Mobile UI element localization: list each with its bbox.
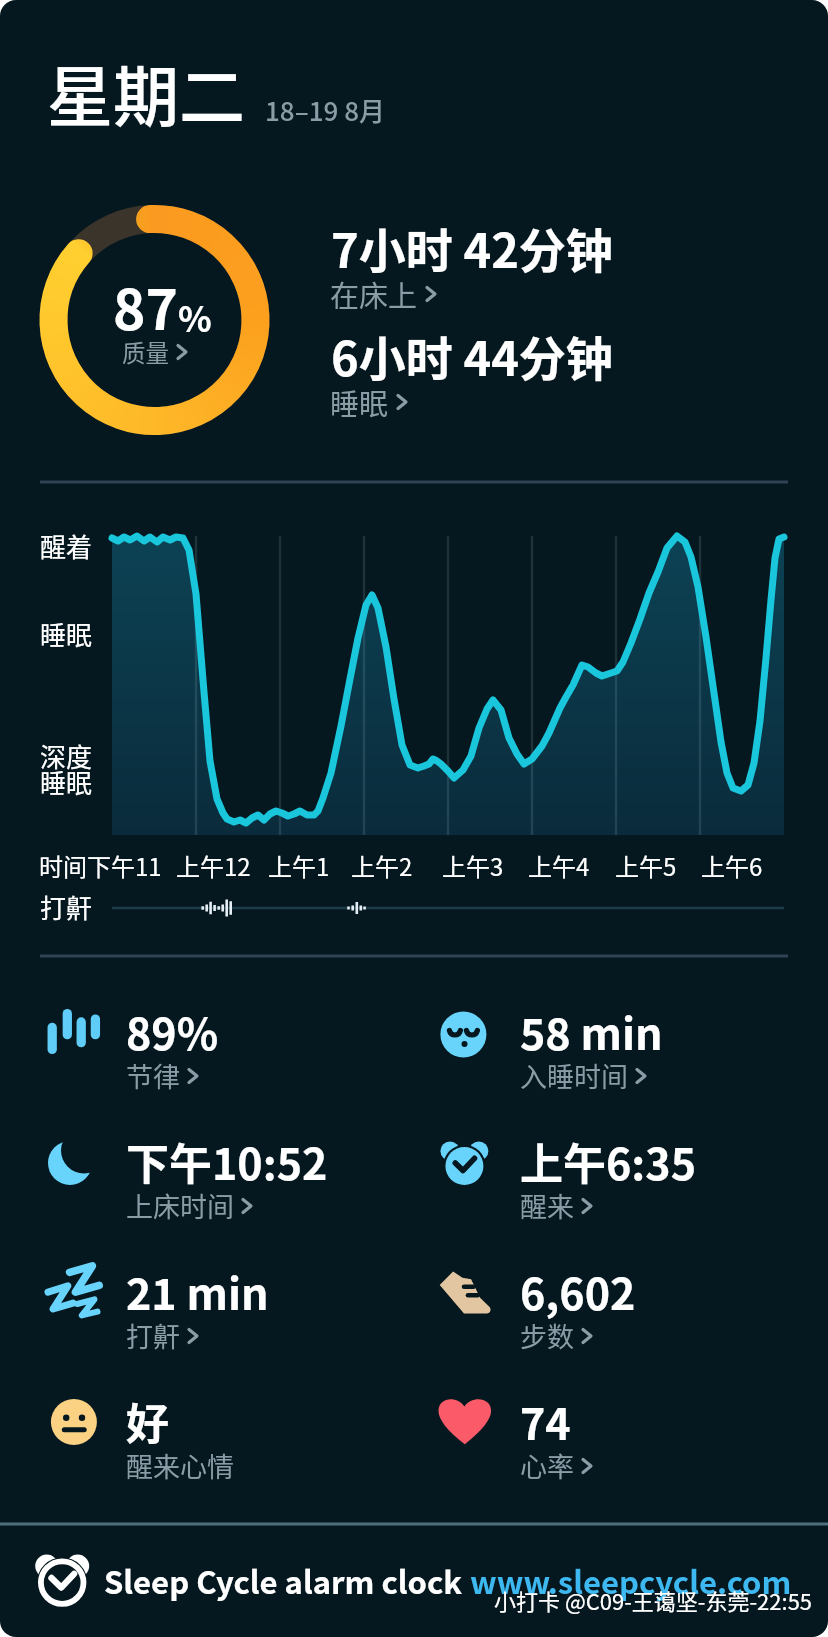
staticText: 上午12 — [176, 848, 251, 883]
staticText: % — [178, 291, 212, 342]
staticText: 睡眠 — [330, 381, 389, 423]
staticText: 小打卡 @C09-王蔼坚-东莞-22:55 — [494, 1584, 813, 1616]
staticText: 21 min — [126, 1260, 269, 1322]
button[interactable]: 21 min — [40, 1265, 410, 1380]
button[interactable]: 下午10:52 — [40, 1135, 410, 1250]
staticText: 质量 — [122, 335, 169, 369]
staticText: Sleep Cycle alarm clock — [104, 1558, 470, 1603]
staticText: 入睡时间 — [520, 1056, 628, 1095]
button[interactable]: 6,602 — [434, 1265, 804, 1380]
staticText: www.sleepcycle.com — [470, 1558, 792, 1603]
staticText: 好 — [126, 1390, 169, 1452]
staticText: 上午5 — [615, 848, 677, 883]
staticText: 上午6 — [701, 848, 763, 883]
staticText: 在床上 — [330, 273, 418, 315]
staticText: 时间下午11 — [39, 848, 162, 883]
staticText: 上午3 — [442, 848, 504, 883]
staticText: 上床时间 — [126, 1186, 234, 1225]
staticText: 18–19 8月 — [265, 91, 385, 129]
button[interactable]: 74 — [434, 1395, 804, 1510]
staticText: 醒来心情 — [126, 1446, 234, 1485]
staticText: 上午2 — [351, 848, 413, 883]
staticText: 醒着 — [40, 527, 93, 565]
button[interactable]: 58 min — [434, 1005, 804, 1120]
button[interactable]: 89% — [40, 1005, 410, 1120]
button[interactable]: 上午6:35 — [434, 1135, 804, 1250]
staticText: 上午1 — [268, 848, 330, 883]
staticText: 打鼾 — [40, 888, 93, 926]
staticText: 上午4 — [528, 848, 590, 883]
staticText: 87 — [113, 266, 178, 346]
staticText: 步数 — [520, 1316, 574, 1355]
staticText: 睡眠 — [40, 763, 93, 801]
staticText: 心率 — [520, 1446, 574, 1485]
staticText: 6,602 — [520, 1260, 636, 1322]
staticText: 6小时 44分钟 — [331, 321, 613, 389]
staticText: 74 — [520, 1390, 571, 1452]
staticText: 星期二 — [47, 44, 245, 140]
button[interactable]: 好 — [40, 1395, 410, 1510]
staticText: 下午10:52 — [126, 1130, 328, 1192]
staticText: 58 min — [520, 1000, 663, 1062]
staticText: 节律 — [126, 1056, 180, 1095]
staticText: 深度 — [40, 737, 93, 775]
staticText: 上午6:35 — [520, 1130, 697, 1192]
staticText: 7小时 42分钟 — [331, 213, 613, 281]
staticText: 醒来 — [520, 1186, 574, 1225]
staticText: 打鼾 — [126, 1316, 180, 1355]
staticText: 睡眠 — [40, 615, 93, 653]
staticText: 89% — [126, 1000, 219, 1062]
